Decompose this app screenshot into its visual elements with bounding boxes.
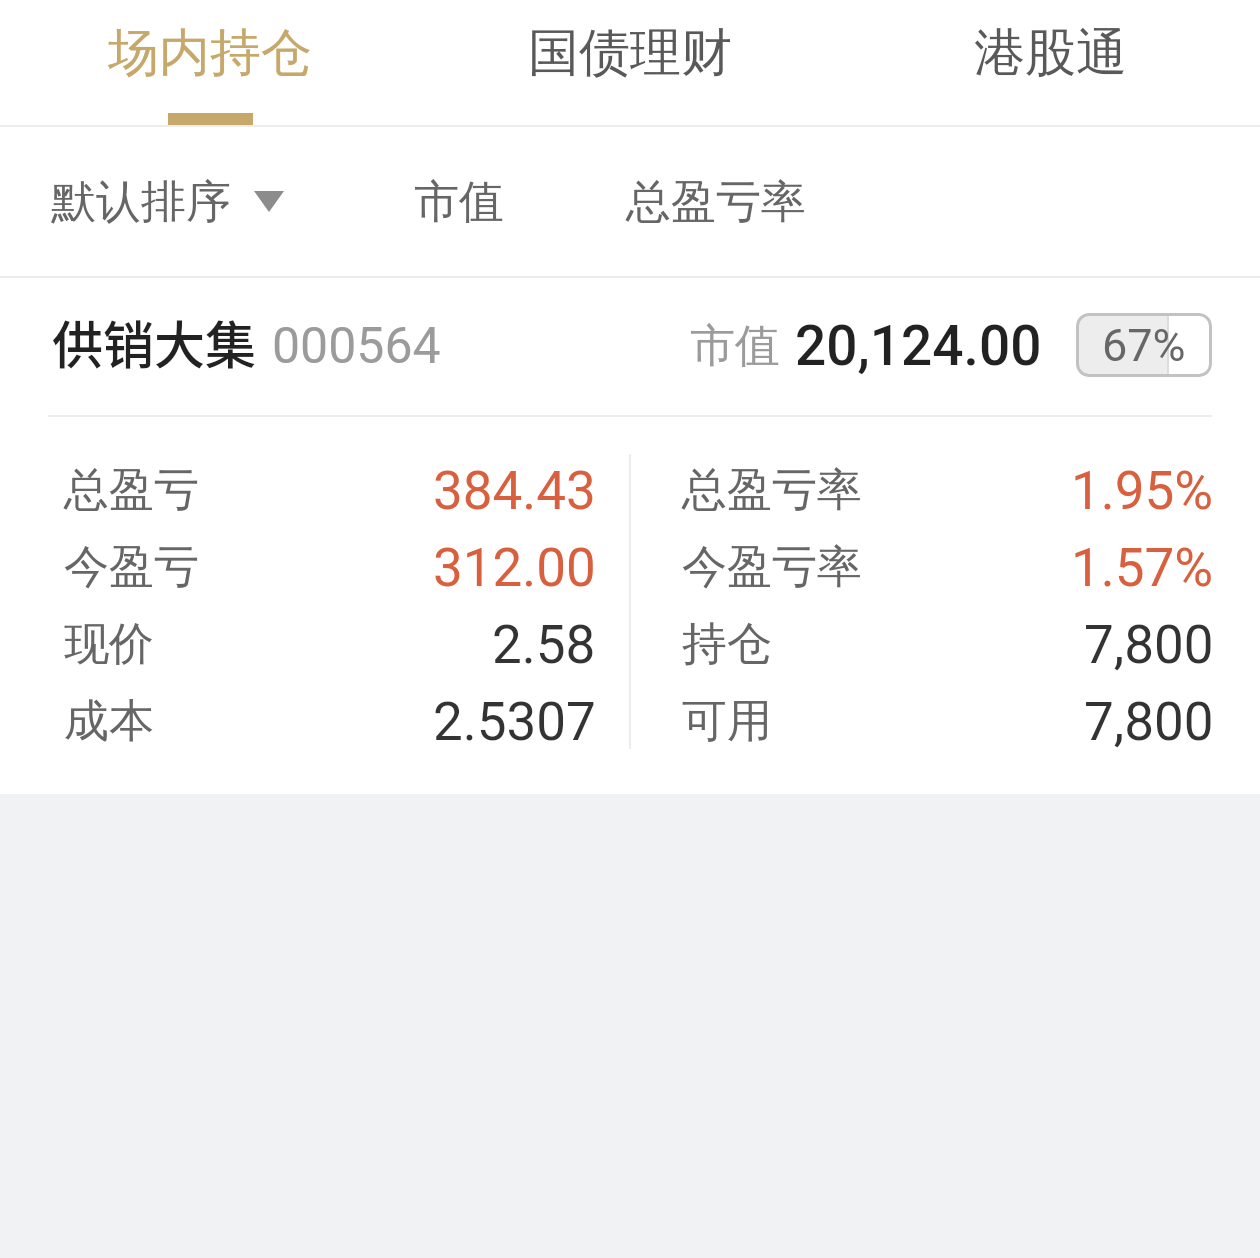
staticText: 总盈亏率 [682, 462, 862, 519]
staticText: 市值 [414, 174, 504, 231]
staticText: 场内持仓 [108, 21, 312, 85]
button[interactable]: 总盈亏率 [626, 127, 806, 278]
staticText: 312.00 [433, 537, 596, 599]
staticText: 7,800 [1084, 691, 1214, 753]
staticText: 持仓 [682, 616, 772, 673]
staticText: 成本 [64, 693, 154, 750]
staticText: 总盈亏率 [626, 174, 806, 231]
staticText: 1.57% [1071, 537, 1214, 599]
button[interactable]: 默认排序 [51, 127, 284, 278]
staticText: 现价 [64, 616, 154, 673]
staticText: 1.95% [1071, 460, 1214, 522]
button[interactable]: 市值 [414, 127, 504, 278]
staticText: 港股通 [974, 21, 1127, 85]
staticText: 默认排序 [51, 174, 231, 231]
button[interactable]: 国债理财 [420, 0, 840, 127]
staticText: 国债理财 [528, 21, 732, 85]
staticText: 今盈亏 [64, 539, 199, 596]
staticText: 67% [1102, 319, 1186, 372]
button[interactable]: 67% [1076, 313, 1212, 377]
staticText: 2.58 [492, 614, 596, 676]
staticText: 20,124.00 [795, 314, 1042, 378]
staticText: 7,800 [1084, 614, 1214, 676]
staticText: 市值 [690, 318, 780, 375]
staticText: 384.43 [433, 460, 596, 522]
staticText: 可用 [682, 693, 772, 750]
staticText: 000564 [272, 317, 441, 376]
button[interactable]: 港股通 [840, 0, 1260, 127]
staticText: 2.5307 [433, 691, 596, 753]
staticText: 供销大集 [52, 305, 257, 379]
button[interactable]: 供销大集 [0, 278, 1260, 794]
button[interactable]: 场内持仓 [0, 0, 420, 127]
staticText: 今盈亏率 [682, 539, 862, 596]
other: Change sort order [254, 191, 284, 212]
staticText: 总盈亏 [64, 462, 199, 519]
